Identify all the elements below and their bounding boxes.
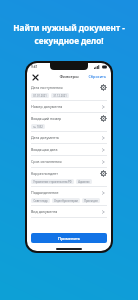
button[interactable]: Входящая дата xyxy=(31,144,107,155)
staticText: Фильтры xyxy=(59,74,79,80)
staticText: Прием дел xyxy=(84,199,98,203)
button[interactable]: № 1052 xyxy=(31,124,45,129)
staticText: № 1052 xyxy=(33,125,43,129)
button[interactable]: Дата поступления xyxy=(31,82,107,93)
staticText: Применить xyxy=(58,236,80,241)
button[interactable]: Прием дел xyxy=(82,198,100,203)
button[interactable]: Отдел бухгалтерии xyxy=(52,198,80,203)
staticText: Админис xyxy=(78,180,90,184)
button[interactable]: Сбросить xyxy=(87,72,107,81)
staticText: Дата документа xyxy=(31,135,101,140)
button[interactable]: Закрыть xyxy=(31,73,39,81)
button[interactable]: Входящий номер xyxy=(31,113,107,124)
staticText: Подразделение xyxy=(31,190,101,195)
staticText: 9:41 xyxy=(31,65,38,69)
staticText: Управление строительства РФ xyxy=(33,180,72,184)
staticText: Дата поступления xyxy=(31,85,101,90)
staticText: Совет недр xyxy=(33,199,48,203)
staticText: Сбросить xyxy=(88,74,106,79)
staticText: Срок исполнения xyxy=(31,159,101,164)
staticText: Отдел бухгалтерии xyxy=(54,199,78,203)
button[interactable]: Вид документа xyxy=(31,206,107,217)
button[interactable]: 31.12.2021 xyxy=(51,93,69,98)
staticText: Корреспондент xyxy=(31,171,101,176)
button[interactable]: Управление строительства РФ xyxy=(31,179,74,184)
button[interactable]: Корреспондент xyxy=(31,168,107,179)
button[interactable]: Совет недр xyxy=(31,198,50,203)
button[interactable]: Подразделение xyxy=(31,187,107,198)
staticText: 01.01.2021 xyxy=(33,94,47,98)
staticText: секундное дело! xyxy=(0,35,138,46)
staticText: Входящая дата xyxy=(31,147,101,152)
staticText: Входящий номер xyxy=(31,116,101,121)
button[interactable]: Админис xyxy=(76,179,92,184)
button[interactable]: Дата документа xyxy=(31,132,107,143)
staticText: Номер документа xyxy=(31,104,101,109)
staticText: 31.12.2021 xyxy=(53,94,67,98)
button[interactable]: Срок исполнения xyxy=(31,156,107,167)
staticText: Вид документа xyxy=(31,209,101,214)
button[interactable]: 01.01.2021 xyxy=(31,93,49,98)
staticText: Найти нужный документ - xyxy=(0,22,138,33)
button[interactable]: Применить xyxy=(31,233,107,243)
button[interactable]: Номер документа xyxy=(31,101,107,112)
